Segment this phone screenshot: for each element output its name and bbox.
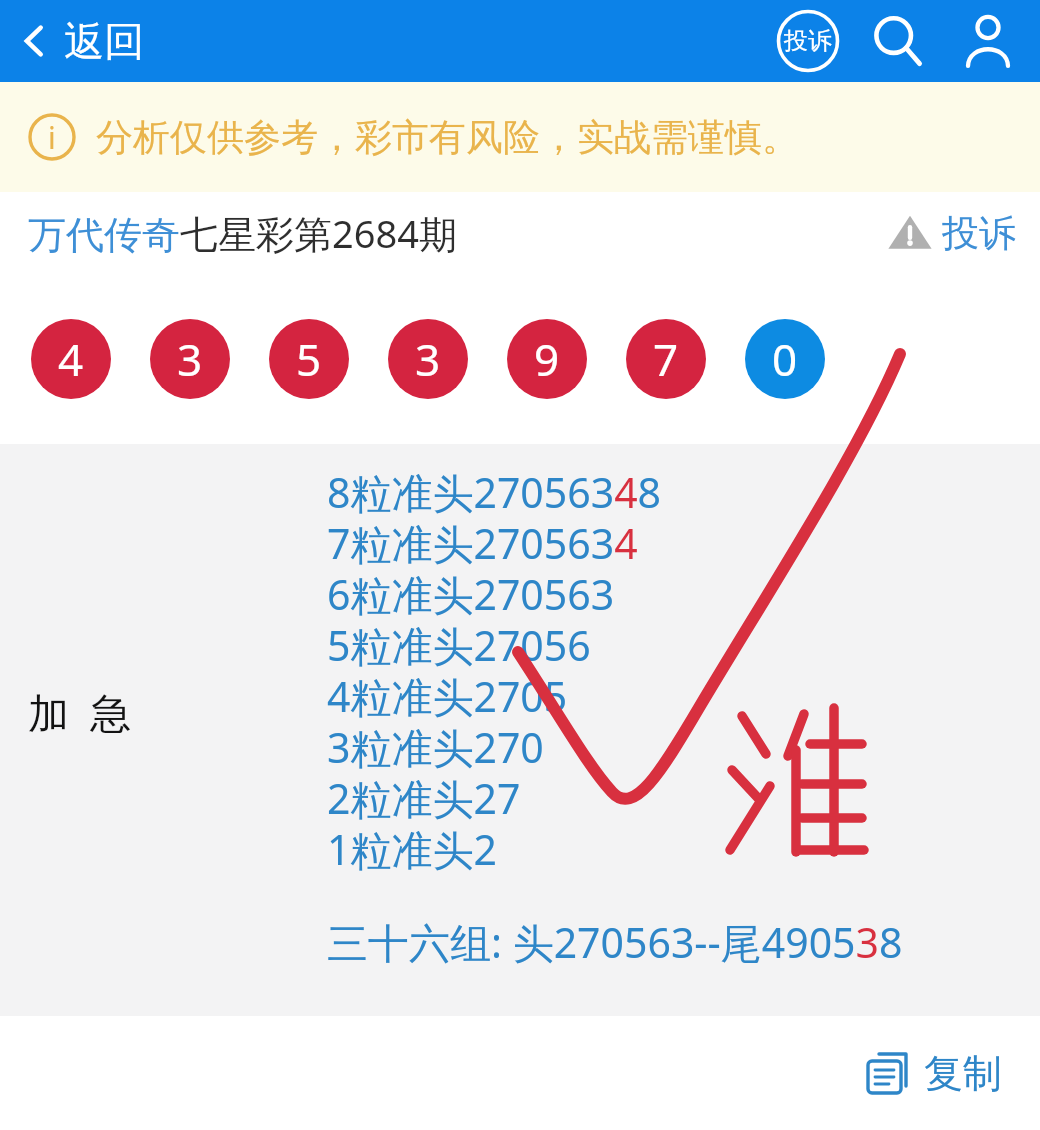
button[interactable]: 返回 xyxy=(16,8,150,74)
staticText: 4 xyxy=(58,329,84,389)
staticText: 分析仅供参考，彩市有风险，实战需谨慎。 xyxy=(96,114,799,161)
staticText: 投诉 xyxy=(784,26,832,56)
button[interactable]: 投诉 xyxy=(882,205,1020,261)
staticText: 6粒准头270563 xyxy=(327,566,615,617)
staticText: 万代传奇七星彩第2684期 xyxy=(28,207,457,259)
button[interactable]: 5 xyxy=(269,319,349,399)
staticText: 7 xyxy=(653,329,679,389)
button[interactable]: 复制 xyxy=(856,1040,1010,1106)
staticText: 2粒准头27 xyxy=(327,770,521,821)
staticText: 5粒准头27056 xyxy=(327,617,591,668)
button[interactable]: 投诉 xyxy=(776,9,840,73)
button[interactable]: 9 xyxy=(507,319,587,399)
staticText: 9 xyxy=(534,329,560,389)
button[interactable]: 7 xyxy=(626,319,706,399)
staticText: 4粒准头2705 xyxy=(327,668,568,719)
staticText: 1粒准头2 xyxy=(327,821,497,872)
staticText: 3 xyxy=(177,329,203,389)
staticText: 复制 xyxy=(924,1049,1002,1098)
button[interactable]: 搜索 xyxy=(866,9,930,73)
button[interactable]: 0 xyxy=(745,319,825,399)
button[interactable]: 3 xyxy=(388,319,468,399)
button[interactable]: 个人中心 xyxy=(956,9,1020,73)
staticText: 0 xyxy=(772,329,798,389)
staticText: 加 急 xyxy=(28,684,132,740)
button[interactable]: 4 xyxy=(31,319,111,399)
staticText: 8粒准头27056348 xyxy=(327,464,662,515)
staticText: 5 xyxy=(296,329,322,389)
staticText: 返回 xyxy=(64,16,144,66)
staticText: 7粒准头2705634 xyxy=(327,515,638,566)
staticText: 投诉 xyxy=(942,210,1016,257)
button[interactable]: 3 xyxy=(150,319,230,399)
staticText: 三十六组: 头270563--尾490538 xyxy=(327,914,903,970)
staticText: 3粒准头270 xyxy=(327,719,544,770)
staticText: 3 xyxy=(415,329,441,389)
staticText: i xyxy=(48,117,56,158)
